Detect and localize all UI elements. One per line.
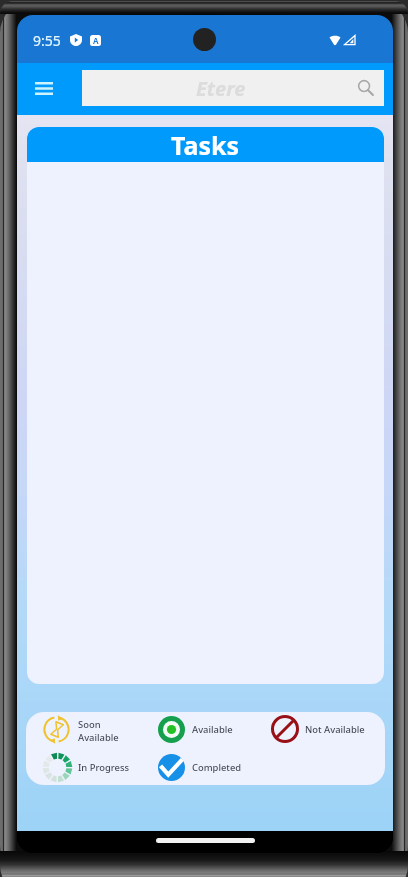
staticText: A (93, 35, 99, 46)
staticText: In Progress (78, 761, 130, 774)
staticText: Tasks (171, 128, 240, 162)
staticText: Available (192, 723, 233, 736)
button[interactable]: Home gesture bar (156, 838, 255, 843)
staticText: Soon (78, 718, 101, 731)
staticText: Completed (192, 761, 242, 774)
button[interactable]: Etere (82, 70, 384, 106)
button[interactable]: Open navigation menu (24, 68, 64, 108)
staticText: 9:55 (33, 31, 61, 50)
staticText: Etere (196, 75, 246, 102)
staticText: Not Available (305, 723, 365, 736)
staticText: Available (78, 731, 119, 744)
